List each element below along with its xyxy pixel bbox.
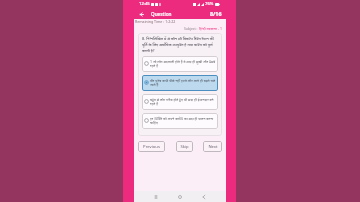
button[interactable]: हर व्यक्ति को अपने कर्तव्य का सदा ही पाल… (142, 113, 218, 129)
staticText: 8/16 (210, 10, 222, 17)
button[interactable]: Skip (176, 141, 193, 152)
staticText: 8. निम्नलिखित में से कौन सी विकल्प रिक्त… (142, 36, 218, 53)
staticText: 12:45 (139, 1, 150, 7)
button[interactable]: Previous (138, 141, 165, 152)
staticText: Previous (143, 144, 160, 150)
staticText: Skip (180, 144, 189, 150)
staticText: Subject : (184, 26, 199, 31)
button[interactable]: Back (199, 192, 209, 202)
button[interactable]: Back (137, 10, 145, 18)
staticText: वीर पुरुष कभी पीछे नहीं हटते और आगे ही ब… (150, 78, 216, 87)
staticText: हर व्यक्ति को अपने कर्तव्य का सदा ही पाल… (150, 116, 216, 125)
button[interactable]: बहुत से लोग गरीब होते हुए भी सदा ही ईमान… (142, 94, 218, 110)
staticText: 1 जो लोग सदाचारी होते हैं वे सदा ही सुखी… (150, 59, 216, 68)
staticText: हिन्दी व्याकरण - 1 (199, 26, 222, 31)
staticText: Remaining Time : 1:2:22 (135, 19, 176, 24)
button[interactable]: Next (203, 141, 222, 152)
staticText: Next (208, 144, 218, 150)
button[interactable]: Recent apps (151, 192, 161, 202)
staticText: Question (151, 11, 172, 17)
button[interactable]: 1 जो लोग सदाचारी होते हैं वे सदा ही सुखी… (142, 56, 218, 72)
staticText: 76% (205, 1, 214, 7)
button[interactable]: वीर पुरुष कभी पीछे नहीं हटते और आगे ही ब… (142, 75, 218, 91)
staticText: बहुत से लोग गरीब होते हुए भी सदा ही ईमान… (150, 97, 216, 106)
button[interactable]: Home (175, 192, 185, 202)
